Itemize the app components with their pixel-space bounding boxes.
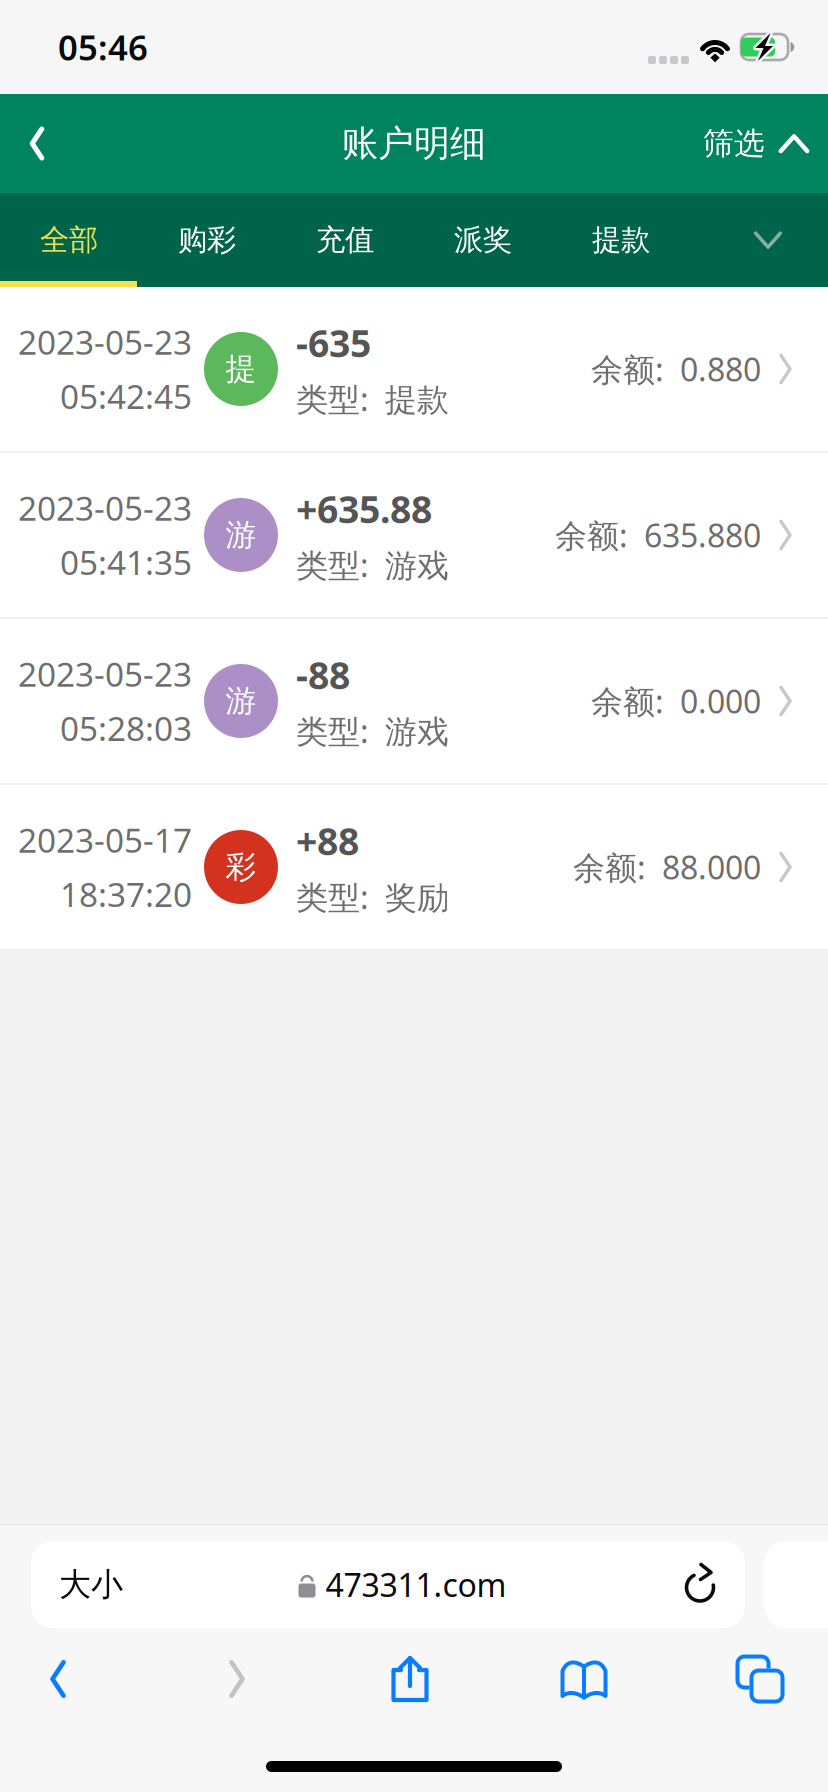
staticText: 05:28:03 [60, 706, 192, 750]
staticText: 473311.com [325, 1563, 506, 1606]
staticText: 类型: 游戏 [296, 543, 449, 586]
button[interactable]: 提款 [552, 193, 690, 287]
button[interactable]: Back [0, 1638, 116, 1720]
staticText: 充值 [316, 222, 374, 258]
staticText: 2023-05-23 [18, 320, 192, 364]
staticText: 05:42:45 [60, 374, 192, 418]
staticText: 游 [225, 682, 256, 720]
staticText: +88 [296, 816, 359, 866]
staticText: 账户明细 [342, 121, 486, 166]
staticText: 类型: 奖励 [296, 875, 449, 918]
staticText: 2023-05-23 [18, 652, 192, 696]
staticText: 派奖 [454, 222, 512, 258]
button[interactable]: Forward [116, 1638, 358, 1720]
staticText: 游 [225, 516, 256, 554]
staticText: 提款 [592, 222, 650, 258]
staticText: 余额: 0.000 [591, 680, 761, 722]
staticText: 2023-05-23 [18, 486, 192, 530]
staticText: 全部 [40, 222, 98, 258]
button[interactable]: More filters [708, 193, 828, 287]
button[interactable]: 2023-05-23 [0, 287, 828, 451]
staticText: -635 [296, 318, 371, 368]
staticText: -88 [296, 650, 350, 700]
staticText: 大小 [59, 1565, 123, 1604]
button[interactable]: 大小 [31, 1541, 745, 1628]
staticText: 05:46 [58, 24, 148, 70]
button[interactable]: 筛选 [683, 103, 825, 183]
button[interactable]: Tabs [706, 1638, 814, 1720]
staticText: 类型: 游戏 [296, 709, 449, 752]
button[interactable]: Bookmarks [462, 1638, 706, 1720]
staticText: 2023-05-17 [18, 818, 192, 862]
button[interactable]: 2023-05-23 [0, 619, 828, 783]
button[interactable]: 充值 [276, 193, 414, 287]
staticText: 筛选 [703, 125, 765, 162]
button[interactable]: 2023-05-17 [0, 785, 828, 949]
staticText: 18:37:20 [60, 872, 192, 916]
button[interactable]: 派奖 [414, 193, 552, 287]
staticText: 提 [225, 350, 256, 388]
staticText: 05:41:35 [60, 540, 192, 584]
staticText: +635.88 [296, 484, 432, 534]
staticText: 余额: 88.000 [573, 846, 761, 888]
staticText: 类型: 提款 [296, 377, 449, 420]
button[interactable]: 2023-05-23 [0, 453, 828, 617]
staticText: 余额: 635.880 [555, 514, 761, 556]
staticText: 彩 [225, 848, 256, 886]
staticText: 余额: 0.880 [591, 348, 761, 390]
button[interactable]: Back [0, 103, 74, 183]
button[interactable]: 购彩 [138, 193, 276, 287]
button[interactable]: 全部 [0, 193, 138, 287]
staticText: 购彩 [178, 222, 236, 258]
button[interactable]: Share [358, 1638, 462, 1720]
